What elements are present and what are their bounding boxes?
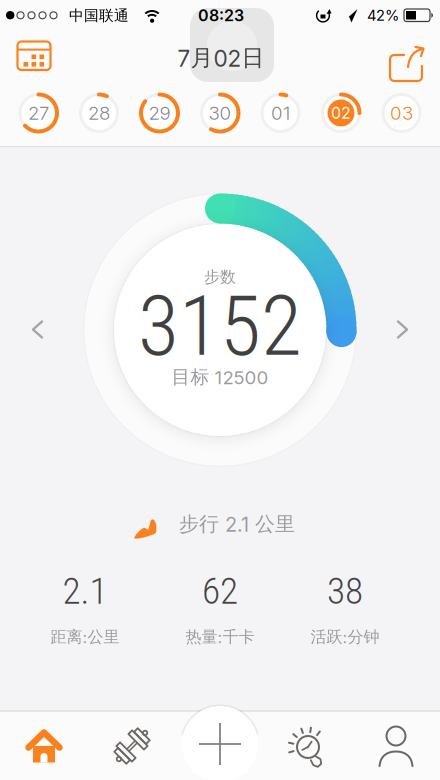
staticText: 08:23 <box>198 6 244 25</box>
staticText: 30 <box>208 102 231 124</box>
staticText: 38 <box>327 569 363 613</box>
staticText: 27 <box>28 102 49 124</box>
staticText: 3152 <box>138 277 302 375</box>
button[interactable] <box>190 8 274 82</box>
button[interactable]: 28 <box>76 90 122 136</box>
button[interactable] <box>381 307 425 351</box>
staticText: 28 <box>88 102 110 124</box>
staticText: 03 <box>390 102 413 124</box>
button[interactable]: 01 <box>257 90 303 136</box>
staticText: 62 <box>202 569 238 613</box>
staticText: 01 <box>271 102 290 124</box>
staticText: 02 <box>331 104 351 122</box>
staticText: 距离:公里 <box>50 627 119 647</box>
staticText: 活跃:分钟 <box>310 627 379 647</box>
staticText: 42% <box>367 7 399 24</box>
button[interactable]: 29 <box>136 90 182 136</box>
staticText: 热量:千卡 <box>185 627 254 647</box>
staticText: 目标 12500 <box>171 365 268 388</box>
button[interactable] <box>92 714 172 778</box>
button[interactable] <box>384 41 428 85</box>
button[interactable] <box>356 714 436 778</box>
button[interactable] <box>178 702 262 780</box>
staticText: 中国联通 <box>69 6 129 24</box>
staticText: 2.1 <box>62 569 107 613</box>
button[interactable] <box>12 37 56 77</box>
staticText: 7月02日 <box>177 44 264 72</box>
button[interactable] <box>4 714 84 778</box>
button[interactable]: 30 <box>197 90 243 136</box>
button[interactable] <box>15 307 59 351</box>
button[interactable] <box>268 714 348 778</box>
staticText: 29 <box>148 102 170 124</box>
button[interactable]: 03 <box>378 90 424 136</box>
button[interactable]: 02 <box>318 90 364 136</box>
staticText: 步行 2.1 公里 <box>179 512 295 536</box>
staticText: 步数 <box>204 267 236 287</box>
button[interactable]: 27 <box>15 90 61 136</box>
